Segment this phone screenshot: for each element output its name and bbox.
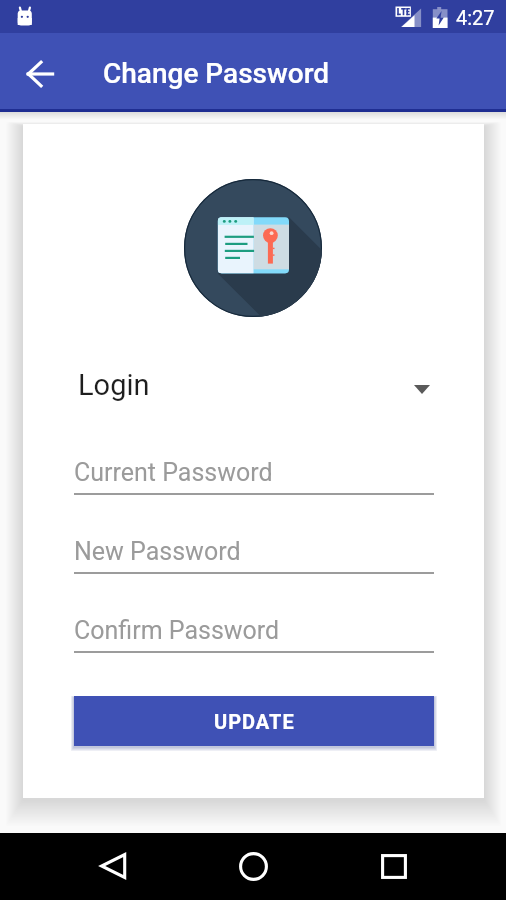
staticText: Current Password bbox=[74, 458, 273, 487]
button[interactable]: Recents bbox=[372, 844, 416, 888]
button[interactable]: UPDATE bbox=[74, 696, 434, 746]
staticText: Login bbox=[78, 368, 150, 402]
button[interactable]: Back bbox=[12, 45, 68, 101]
button[interactable]: Home bbox=[231, 844, 275, 888]
button[interactable]: Confirm Password bbox=[74, 611, 434, 653]
staticText: 4:27 bbox=[456, 6, 495, 29]
staticText: New Password bbox=[74, 537, 241, 566]
button[interactable]: Back bbox=[91, 844, 135, 888]
staticText: Confirm Password bbox=[74, 616, 280, 645]
button[interactable]: Login bbox=[74, 368, 434, 410]
button[interactable]: New Password bbox=[74, 532, 434, 574]
staticText: Change Password bbox=[103, 57, 330, 90]
staticText: UPDATE bbox=[214, 710, 295, 733]
button[interactable]: Current Password bbox=[74, 453, 434, 495]
